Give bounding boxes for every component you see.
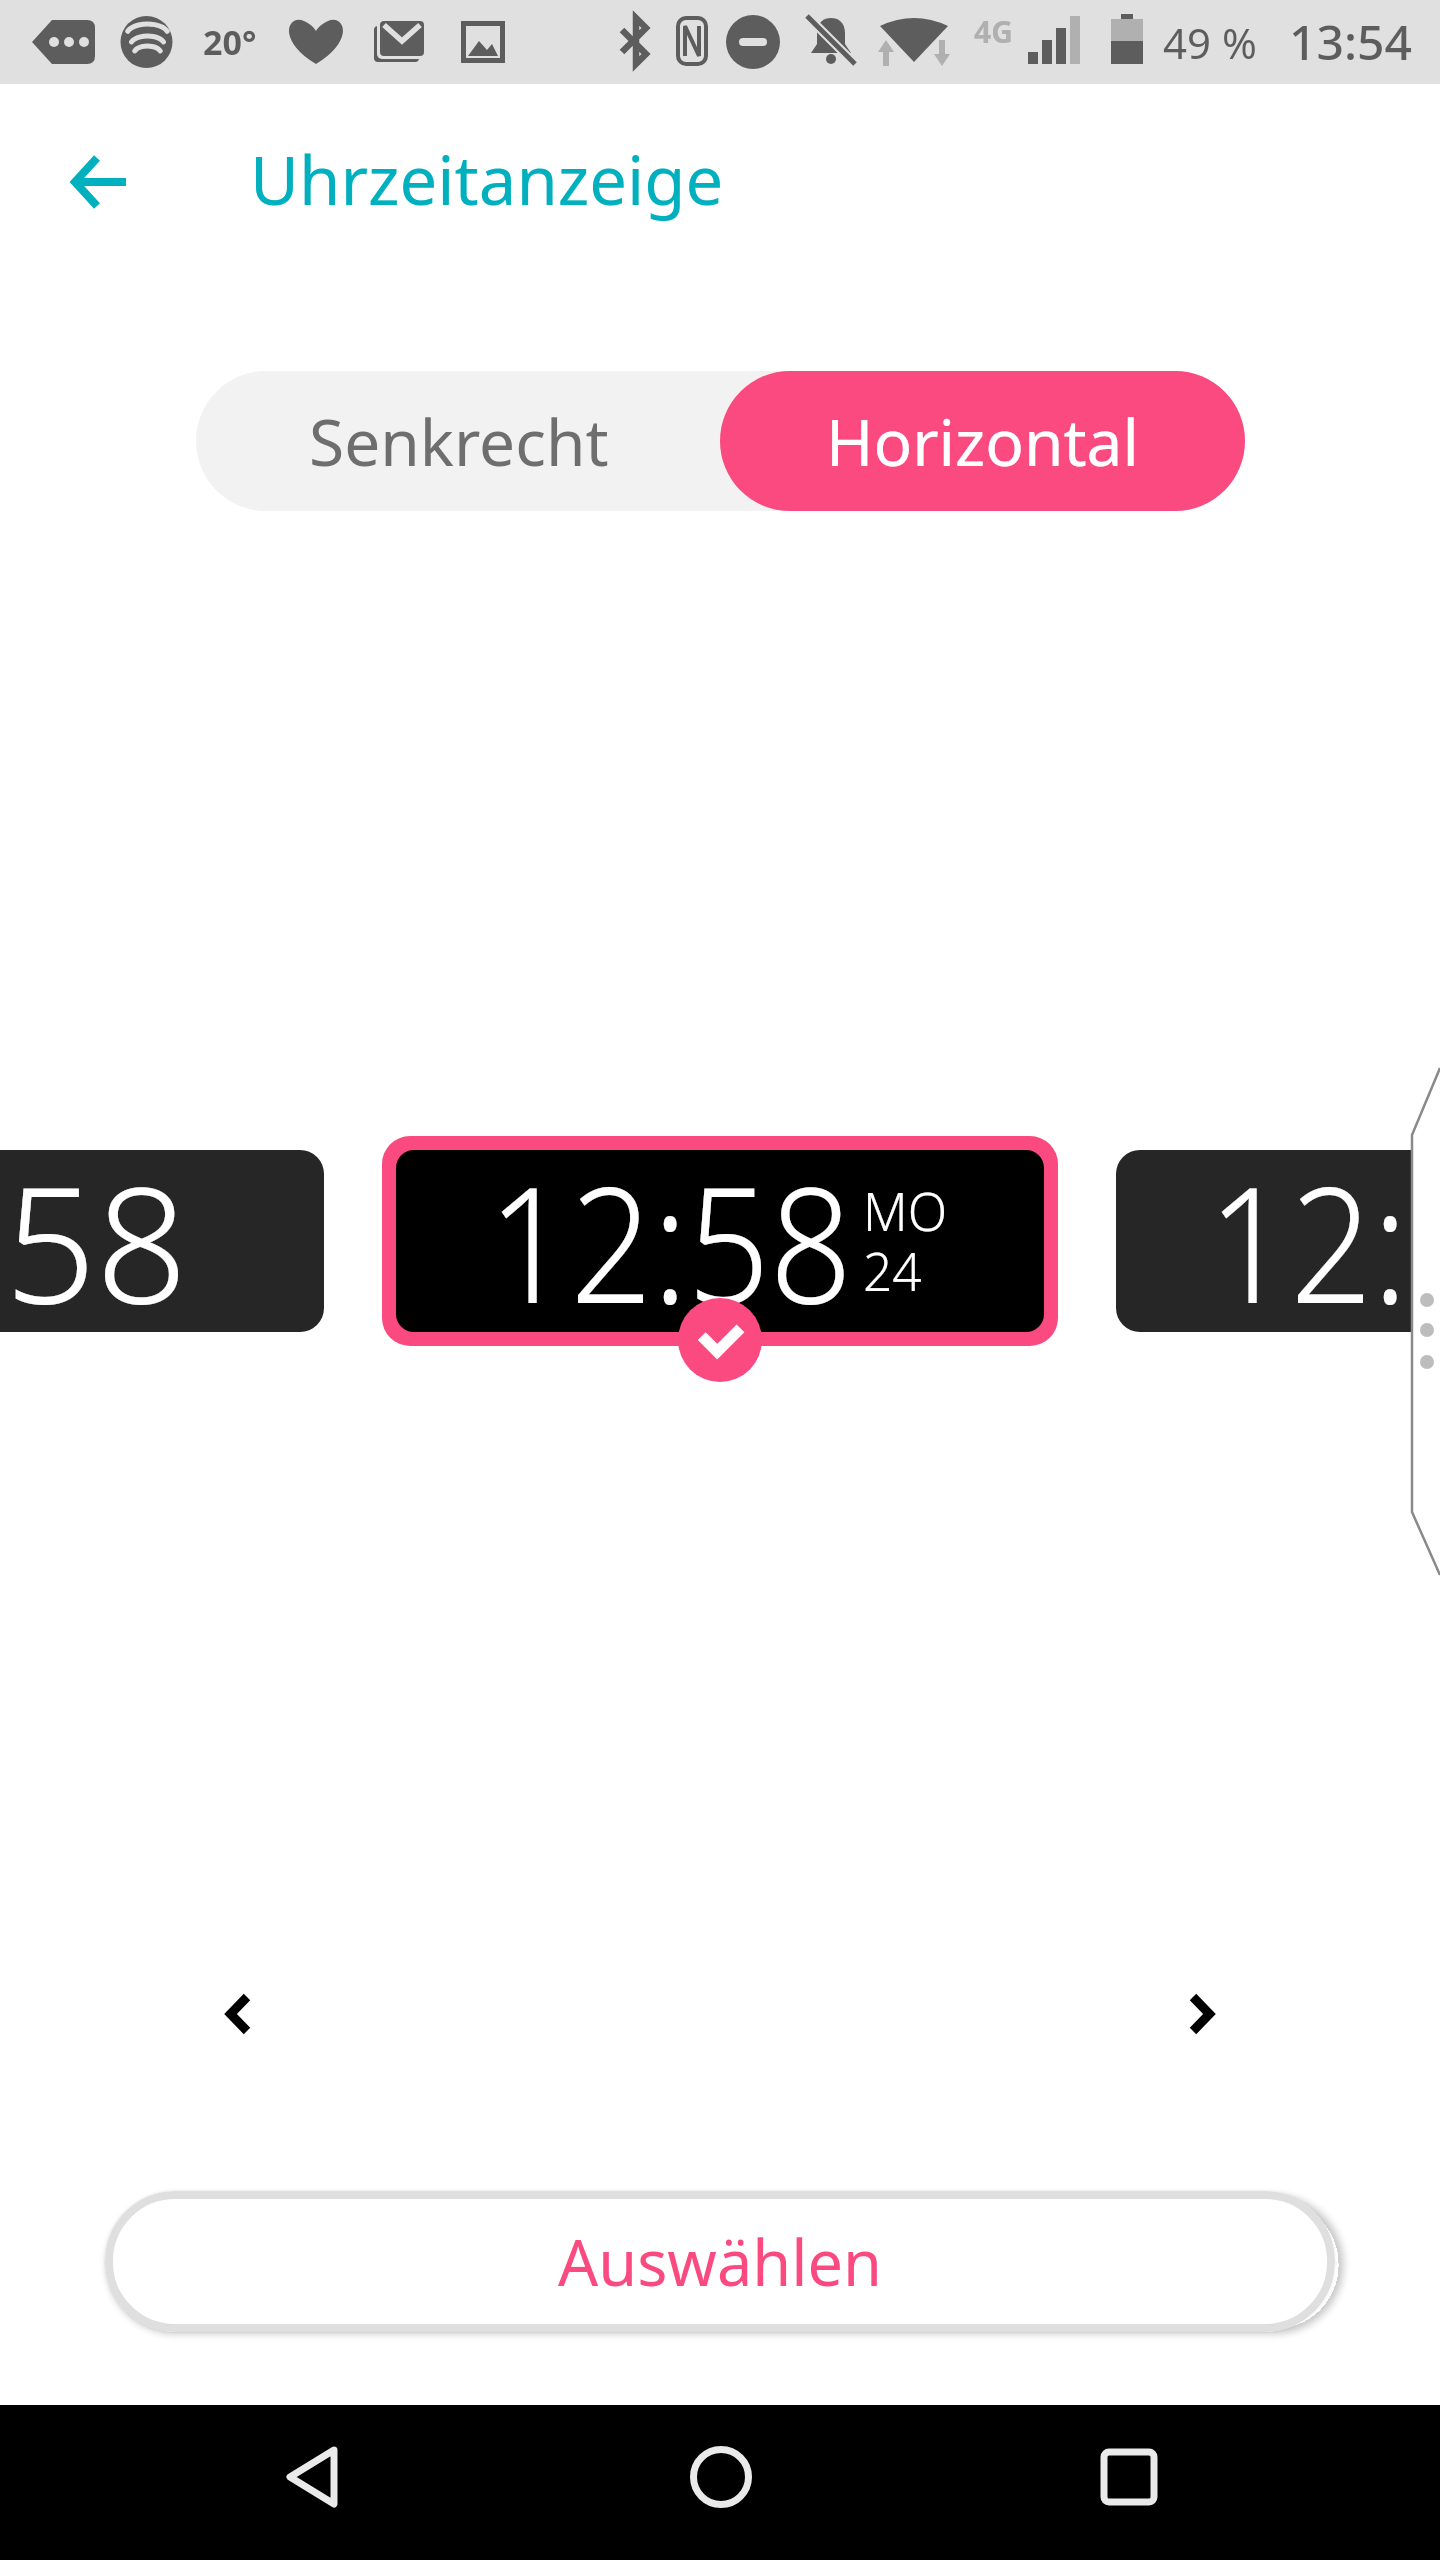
- button[interactable]: Back: [42, 125, 156, 239]
- button[interactable]: Home: [651, 2407, 791, 2547]
- button[interactable]: Horizontal: [720, 371, 1245, 511]
- staticText: 12:58: [488, 1150, 852, 1332]
- button[interactable]: Next: [1141, 1954, 1261, 2074]
- button[interactable]: Selected: [678, 1298, 762, 1382]
- staticText: Auswählen: [558, 2219, 882, 2305]
- button[interactable]: 12:58: [382, 1136, 1058, 1346]
- button[interactable]: 12:58: [0, 1150, 324, 1332]
- staticText: 24: [863, 1233, 922, 1307]
- staticText: MO: [863, 1173, 947, 1247]
- staticText: 13:54: [1289, 9, 1412, 74]
- staticText: 12:58: [0, 1150, 188, 1332]
- button[interactable]: Previous: [177, 1954, 297, 2074]
- staticText: 4G: [974, 11, 1013, 52]
- staticText: Uhrzeitanzeige: [250, 133, 724, 224]
- button[interactable]: Senkrecht: [196, 371, 721, 511]
- button[interactable]: Back: [245, 2407, 385, 2547]
- staticText: Senkrecht: [309, 398, 609, 485]
- button[interactable]: Auswählen: [105, 2191, 1335, 2332]
- staticText: 20°: [203, 19, 257, 65]
- staticText: 49 %: [1163, 14, 1257, 71]
- button[interactable]: 12:58: [1116, 1150, 1440, 1332]
- staticText: Horizontal: [826, 398, 1139, 485]
- staticText: 12:58: [1208, 1150, 1440, 1332]
- button[interactable]: Recent apps: [1059, 2407, 1199, 2547]
